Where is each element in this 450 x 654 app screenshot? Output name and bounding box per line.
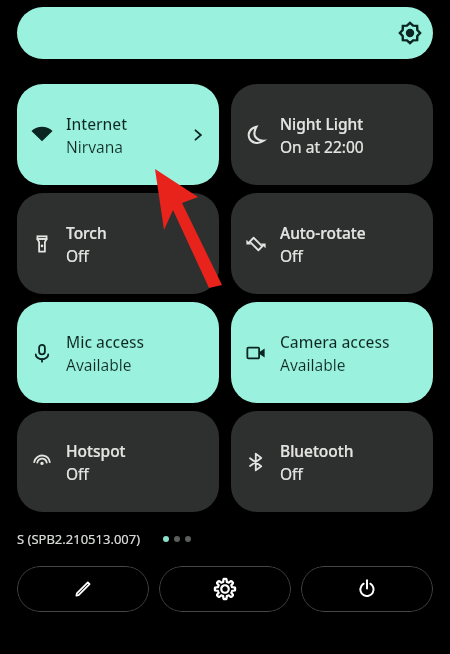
- button[interactable]: Camera access: [231, 302, 433, 403]
- button[interactable]: Torch: [17, 193, 219, 294]
- staticText: Available: [66, 354, 132, 375]
- staticText: Auto-rotate: [280, 222, 366, 243]
- button[interactable]: Auto-rotate: [231, 193, 433, 294]
- staticText: Bluetooth: [280, 440, 354, 461]
- staticText: Available: [280, 354, 346, 375]
- button[interactable]: Settings: [159, 566, 291, 612]
- button[interactable]: Hotspot: [17, 411, 219, 512]
- button[interactable]: Power: [301, 566, 433, 612]
- staticText: Off: [66, 463, 89, 484]
- button[interactable]: Edit: [17, 566, 149, 612]
- staticText: Hotspot: [66, 440, 126, 461]
- staticText: Camera access: [280, 331, 390, 352]
- staticText: Off: [66, 245, 89, 266]
- button[interactable]: Brightness: [17, 7, 433, 59]
- button[interactable]: Internet: [17, 84, 219, 185]
- staticText: Nirvana: [66, 136, 124, 157]
- staticText: Off: [280, 245, 303, 266]
- staticText: Mic access: [66, 331, 145, 352]
- button[interactable]: Night Light: [231, 84, 433, 185]
- staticText: S (SPB2.210513.007): [17, 530, 141, 548]
- staticText: Night Light: [280, 113, 364, 134]
- button[interactable]: Bluetooth: [231, 411, 433, 512]
- staticText: Internet: [66, 113, 128, 134]
- staticText: On at 22:00: [280, 136, 364, 157]
- button[interactable]: Mic access: [17, 302, 219, 403]
- staticText: Torch: [66, 222, 107, 243]
- staticText: Off: [280, 463, 303, 484]
